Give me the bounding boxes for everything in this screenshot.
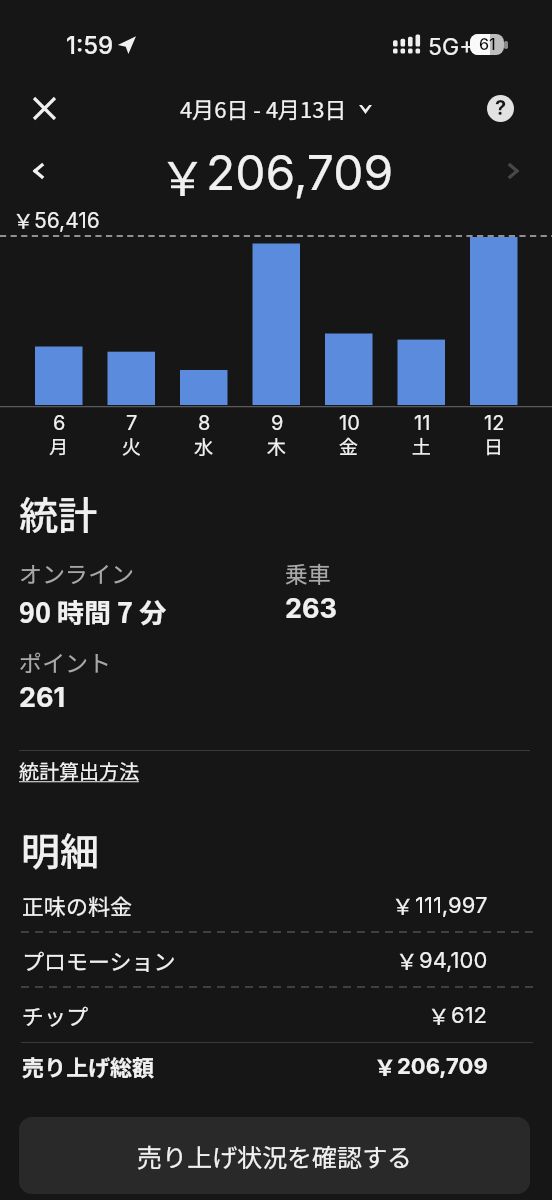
button[interactable]: 4月6日 - 4月13日 <box>176 92 376 124</box>
staticText: ￥ <box>13 205 34 235</box>
staticText: 612 <box>451 1002 488 1029</box>
button[interactable]: 閉じる <box>22 86 66 130</box>
staticText: 56,416 <box>34 208 100 233</box>
button[interactable]: 前の週 <box>20 153 56 189</box>
staticText: ￥ <box>374 1050 397 1082</box>
staticText: 統計 <box>19 485 98 541</box>
staticText: 売り上げ状況を確認する <box>137 1138 413 1174</box>
staticText: 4月6日 - 4月13日 <box>180 92 347 124</box>
staticText: 木 <box>267 432 287 460</box>
button[interactable]: 売り上げ状況を確認する <box>19 1117 530 1194</box>
staticText: ￥ <box>428 999 451 1031</box>
staticText: 261 <box>19 681 66 714</box>
staticText: 金 <box>339 432 359 460</box>
staticText: 206,709 <box>397 1053 488 1080</box>
staticText: 263 <box>285 592 337 625</box>
staticText: ￥ <box>392 889 415 921</box>
staticText: オンライン <box>19 556 134 589</box>
staticText: 月 <box>49 432 69 460</box>
staticText: 水 <box>194 432 214 460</box>
staticText: 5G+ <box>428 33 475 61</box>
staticText: 111,997 <box>415 892 488 919</box>
staticText: 12 <box>484 411 505 435</box>
staticText: 8 <box>198 411 211 435</box>
staticText: 1:59 <box>66 31 114 60</box>
staticText: 明細 <box>21 821 100 877</box>
staticText: ￥ <box>159 141 206 203</box>
staticText: ポイント <box>19 645 111 678</box>
staticText: 日 <box>484 432 504 460</box>
staticText: 土 <box>412 432 432 460</box>
staticText: 乗車 <box>285 556 331 589</box>
staticText: 6 <box>53 411 66 435</box>
staticText: 90 時間 7 分 <box>19 592 167 631</box>
staticText: 9 <box>271 411 284 435</box>
staticText: 火 <box>122 432 142 460</box>
staticText: 7 <box>126 411 138 435</box>
staticText: 206,709 <box>206 143 394 201</box>
staticText: ￥ <box>396 944 419 976</box>
staticText: 売り上げ総額 <box>22 1050 155 1082</box>
button[interactable]: プロモーション <box>22 942 488 978</box>
button[interactable]: 次の週 <box>495 153 531 189</box>
button[interactable]: 売り上げ総額 <box>22 1048 488 1084</box>
staticText: プロモーション <box>22 944 176 976</box>
button[interactable]: 正味の料金 <box>22 887 488 923</box>
button[interactable]: 統計算出方法 <box>19 756 139 785</box>
staticText: 10 <box>339 411 360 435</box>
button[interactable]: チップ <box>22 997 488 1033</box>
staticText: 61 <box>479 34 496 53</box>
button[interactable]: ヘルプ <box>478 86 522 130</box>
staticText: チップ <box>22 999 89 1031</box>
staticText: 正味の料金 <box>22 889 133 921</box>
staticText: ? <box>495 96 507 120</box>
staticText: 11 <box>414 411 431 435</box>
staticText: 94,100 <box>419 947 488 974</box>
